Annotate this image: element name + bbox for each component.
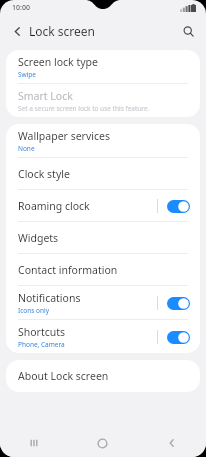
button[interactable]: Notifications toggle — [165, 291, 191, 315]
staticText: Clock style — [18, 167, 70, 181]
staticText: Set a secure screen lock to use this fea… — [18, 104, 150, 113]
staticText: Widgets — [18, 231, 59, 245]
button[interactable]: Screen lock type — [6, 50, 200, 83]
staticText: Notifications — [18, 291, 81, 305]
button[interactable]: About Lock screen — [6, 360, 200, 392]
button[interactable]: Recents — [0, 429, 68, 457]
staticText: Contact information — [18, 263, 118, 277]
staticText: None — [18, 144, 35, 153]
button[interactable]: Shortcuts — [6, 320, 200, 353]
staticText: Icons only — [18, 306, 50, 315]
staticText: 10:00 — [12, 3, 30, 13]
staticText: Swipe — [18, 70, 37, 79]
button[interactable]: Clock style — [6, 158, 200, 189]
button[interactable]: Contact information — [6, 254, 200, 285]
button[interactable]: Smart Lock — [6, 84, 200, 117]
button[interactable]: Notifications — [6, 286, 200, 319]
button[interactable]: Roaming clock — [6, 190, 200, 221]
button[interactable]: Search — [176, 19, 200, 43]
button[interactable]: Back — [137, 429, 206, 457]
staticText: Shortcuts — [18, 325, 66, 339]
button[interactable]: Shortcuts toggle — [165, 325, 191, 349]
button[interactable]: Roaming clock toggle — [165, 194, 191, 218]
staticText: Wallpaper services — [18, 129, 110, 143]
staticText: Phone, Camera — [18, 340, 65, 349]
button[interactable]: Widgets — [6, 222, 200, 253]
button[interactable]: Wallpaper services — [6, 124, 200, 157]
staticText: About Lock screen — [18, 369, 109, 383]
staticText: Lock screen — [29, 23, 96, 39]
button[interactable]: Home — [68, 429, 137, 457]
staticText: Smart Lock — [18, 89, 73, 103]
button[interactable]: Back — [6, 20, 28, 42]
staticText: Screen lock type — [18, 55, 98, 69]
staticText: Roaming clock — [18, 199, 90, 213]
